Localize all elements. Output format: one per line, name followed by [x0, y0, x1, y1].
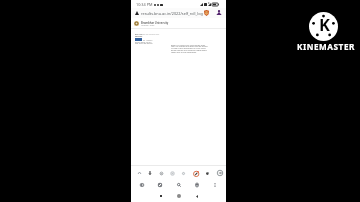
staticText: KINEMASTER — [297, 41, 355, 52]
staticText: K — [319, 13, 330, 35]
staticText: results.bnu.ac.in/2022/self_roll_log — [141, 11, 203, 16]
staticText: Lucknow - India — [141, 24, 155, 26]
button[interactable]: Account — [215, 9, 222, 16]
button[interactable]: Back — [191, 190, 203, 202]
button[interactable]: Settings — [178, 168, 188, 178]
staticText: Roll No Session — [135, 33, 143, 38]
button[interactable]: Downloads — [192, 180, 202, 190]
button[interactable]: Stickers — [156, 168, 166, 178]
button[interactable]: Clipboard — [202, 168, 212, 178]
button[interactable]: Brave rewards — [191, 168, 201, 178]
staticText: 10:34 PM — [136, 2, 153, 7]
staticText: Brambhar University — [141, 21, 169, 25]
button[interactable]: Tabs — [155, 180, 165, 190]
button[interactable]: Recents — [155, 190, 167, 202]
button[interactable]: Back — [137, 180, 147, 190]
staticText: Result: To check your result kindly ente… — [171, 44, 209, 54]
staticText: enter roll number here — [141, 33, 160, 35]
button[interactable]: Next — [215, 168, 225, 178]
button[interactable]: Search — [174, 180, 184, 190]
button[interactable]: Home — [173, 190, 185, 202]
button[interactable]: Expand — [134, 168, 144, 178]
button[interactable]: Voice input — [145, 168, 155, 178]
staticText: ex. 1234567 — [143, 39, 153, 41]
button[interactable]: Brave shields — [203, 9, 210, 16]
staticText: please enter roll no. and press get butt… — [135, 41, 153, 45]
button[interactable]: GIF — [167, 168, 177, 178]
button[interactable]: More options — [210, 180, 220, 190]
